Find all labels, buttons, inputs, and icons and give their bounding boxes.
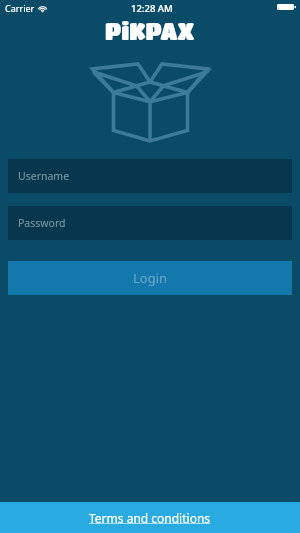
button[interactable]: Login: [8, 261, 292, 295]
staticText: PiKPAX: [105, 18, 195, 44]
staticText: Terms and conditions: [89, 510, 211, 526]
staticText: Password: [18, 216, 66, 230]
staticText: Username: [18, 169, 70, 183]
staticText: 12:28 AM: [131, 2, 173, 15]
button[interactable]: Password: [8, 206, 292, 240]
staticText: Carrier: [5, 2, 35, 14]
button[interactable]: Username: [8, 159, 292, 193]
staticText: Login: [133, 269, 168, 287]
button[interactable]: Terms and conditions: [0, 502, 300, 533]
